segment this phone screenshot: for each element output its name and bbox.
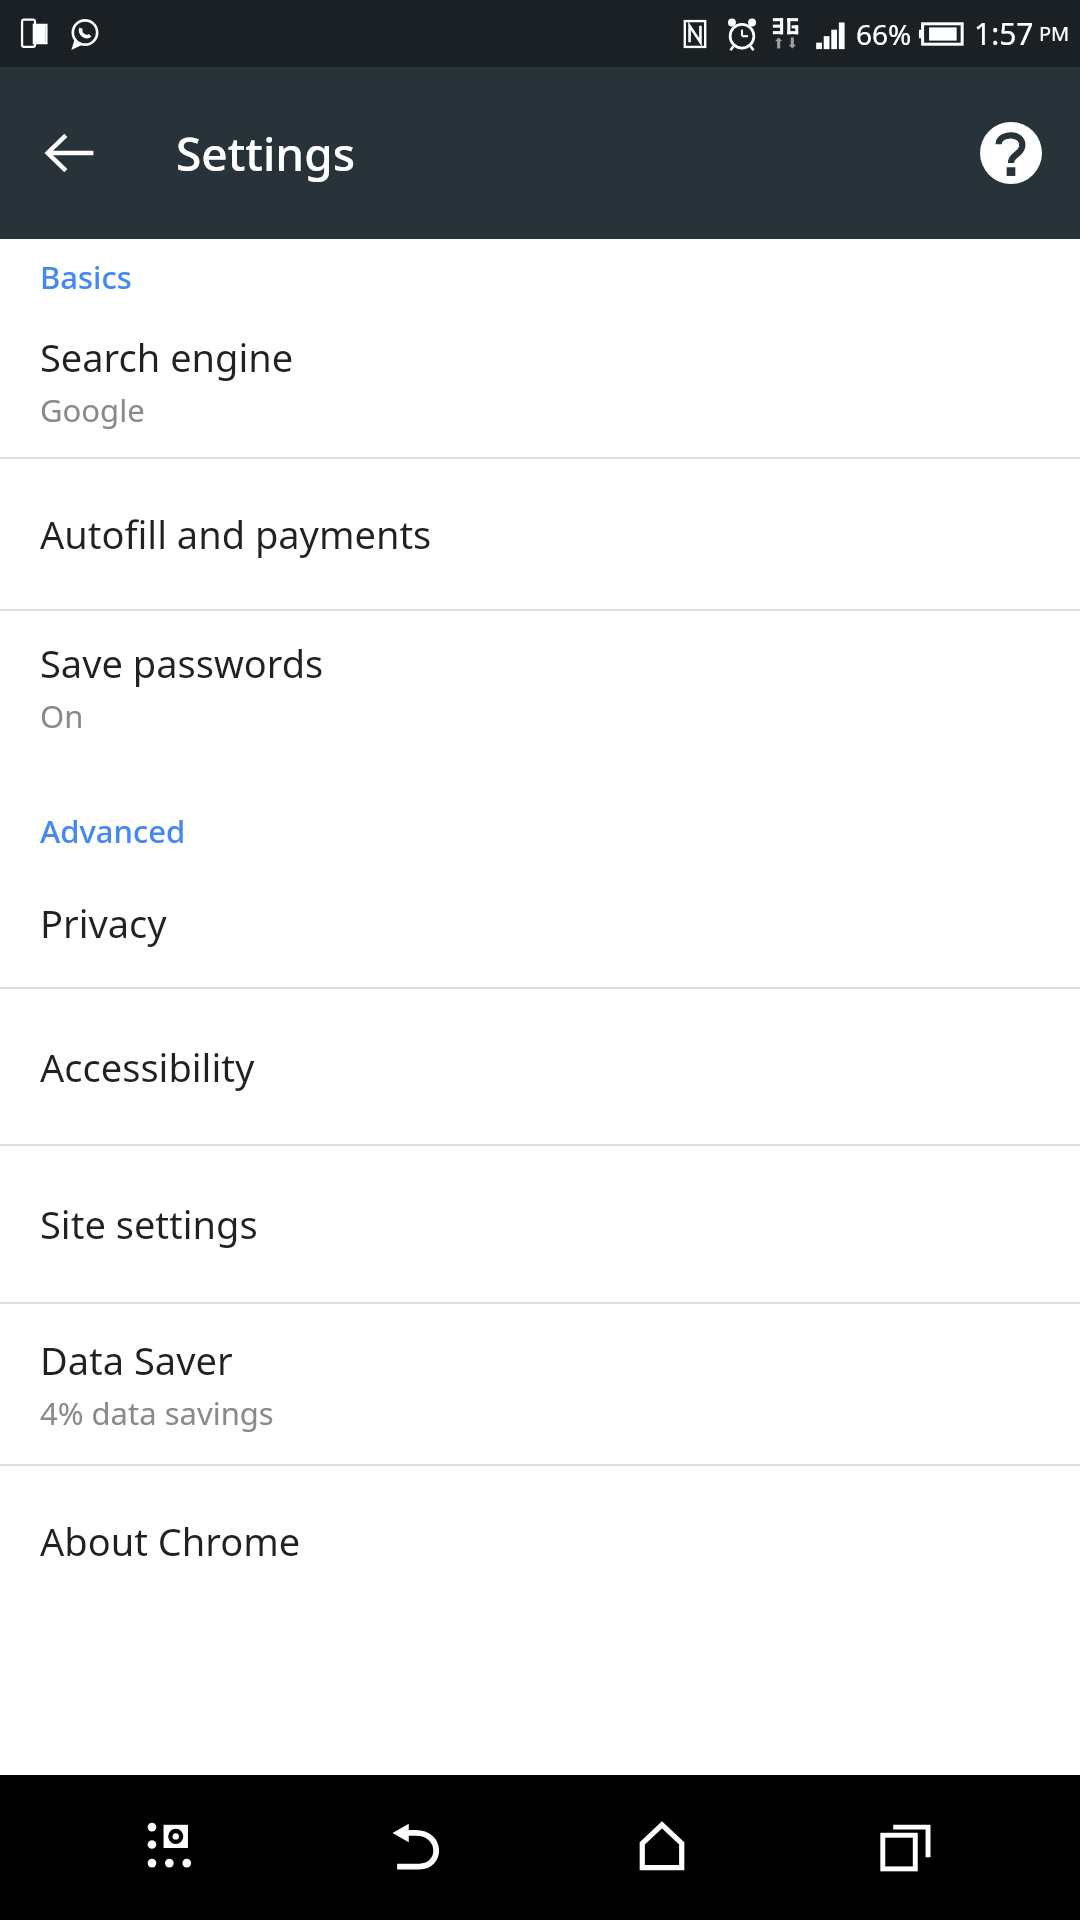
staticText: Save passwords (40, 637, 324, 689)
staticText: Settings (176, 122, 356, 185)
staticText: Google (40, 389, 145, 431)
staticText: Basics (40, 256, 132, 298)
button[interactable]: Help (968, 110, 1054, 196)
staticText: 1:57 (974, 13, 1034, 54)
staticText: Advanced (40, 810, 186, 852)
staticText: Privacy (40, 897, 167, 949)
button[interactable]: Back (348, 1778, 488, 1918)
button[interactable]: Accessibility (0, 989, 1080, 1144)
button[interactable]: About Chrome (0, 1466, 1080, 1616)
button[interactable]: Menu (104, 1778, 244, 1918)
button[interactable]: Home (592, 1778, 732, 1918)
staticText: PM (1039, 20, 1070, 47)
button[interactable]: Autofill and payments (0, 459, 1080, 609)
button[interactable]: Back (24, 107, 116, 199)
staticText: About Chrome (40, 1515, 301, 1567)
button[interactable]: Save passwords (0, 611, 1080, 763)
staticText: Site settings (40, 1198, 258, 1250)
button[interactable]: Search engine (0, 305, 1080, 457)
staticText: Search engine (40, 331, 294, 383)
staticText: On (40, 695, 84, 737)
button[interactable]: Site settings (0, 1146, 1080, 1302)
staticText: Autofill and payments (40, 508, 432, 560)
staticText: 66% (856, 15, 912, 53)
button[interactable]: Privacy (0, 859, 1080, 987)
staticText: 4% data savings (40, 1392, 274, 1434)
staticText: Accessibility (40, 1041, 255, 1093)
staticText: Data Saver (40, 1334, 233, 1386)
button[interactable]: Recent apps (836, 1778, 976, 1918)
button[interactable]: Data Saver (0, 1304, 1080, 1464)
